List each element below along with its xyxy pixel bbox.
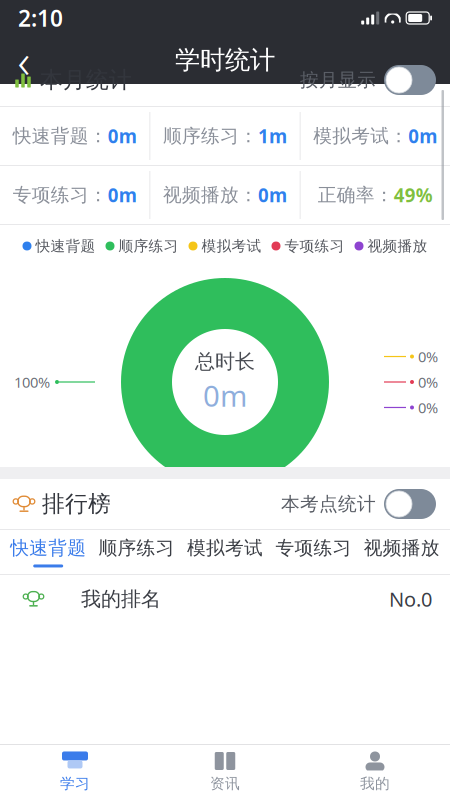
staticText: 我的排名 (81, 587, 161, 611)
staticText: 视频播放 (364, 536, 440, 559)
button[interactable]: 顺序练习 (92, 530, 181, 574)
staticText: 100% (14, 372, 50, 392)
staticText: 模拟考试 (187, 536, 263, 559)
staticText: 顺序练习 (99, 536, 175, 559)
staticText: 视频播放 (367, 237, 427, 255)
staticText: 资讯 (210, 774, 240, 792)
staticText: 专项练习 (284, 237, 344, 255)
staticText: 0m (108, 183, 137, 207)
staticText: 模拟考试： (313, 124, 408, 147)
button[interactable]: 学习 (0, 744, 150, 800)
staticText: 0% (418, 372, 438, 392)
staticText: 学时统计 (175, 44, 275, 75)
staticText: 0m (408, 124, 437, 148)
staticText: 按月显示 (300, 68, 376, 91)
staticText: 快速背题： (13, 124, 108, 147)
staticText: 专项练习： (13, 183, 108, 206)
button[interactable]: 视频播放 (358, 530, 446, 574)
staticText: 模拟考试 (201, 237, 261, 255)
staticText: 我的 (360, 774, 390, 792)
staticText: 1m (258, 124, 287, 148)
staticText: 49% (394, 183, 433, 207)
button[interactable]: 专项练习 (269, 530, 358, 574)
staticText: 总时长 (195, 349, 255, 374)
staticText: 2:10 (18, 3, 63, 33)
staticText: ‹ (17, 28, 30, 92)
staticText: 本考点统计 (281, 492, 376, 515)
staticText: 顺序练习： (163, 124, 258, 147)
staticText: 快速背题 (35, 237, 95, 255)
staticText: 0m (108, 124, 137, 148)
button[interactable]: 我的 (300, 744, 450, 800)
button[interactable]: 快速背题 (4, 530, 92, 574)
staticText: 0m (258, 183, 287, 207)
staticText: 排行榜 (42, 490, 111, 518)
button[interactable]: Back (0, 36, 48, 84)
staticText: 专项练习 (275, 536, 351, 559)
staticText: No.0 (389, 586, 432, 612)
button[interactable]: 我的排名 (0, 575, 450, 623)
staticText: 视频播放： (163, 183, 258, 206)
staticText: 正确率： (318, 183, 394, 206)
button[interactable]: 资讯 (150, 744, 300, 800)
staticText: 顺序练习 (118, 237, 178, 255)
button[interactable]: 模拟考试 (181, 530, 269, 574)
staticText: 本月统计 (40, 66, 132, 94)
staticText: 学习 (60, 774, 90, 792)
button[interactable]: Toggle (384, 489, 436, 519)
button[interactable]: Toggle (384, 65, 436, 95)
staticText: 快速背题 (10, 536, 86, 559)
staticText: 0m (203, 376, 247, 415)
staticText: 0% (418, 347, 438, 366)
staticText: 0% (418, 398, 438, 417)
